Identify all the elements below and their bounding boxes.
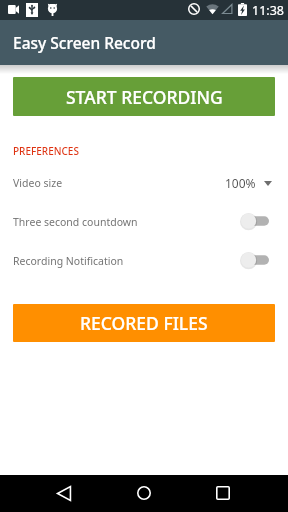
button[interactable]: Home	[120, 475, 168, 512]
button[interactable]: Back	[40, 475, 88, 512]
staticText: RECORED FILES	[80, 311, 208, 335]
button[interactable]: Three second countdown	[0, 209, 288, 235]
staticText: 100%	[225, 175, 256, 191]
staticText: Easy Screen Record	[13, 32, 156, 53]
button[interactable]: START RECORDING	[13, 77, 275, 116]
staticText: Three second countdown	[13, 215, 138, 229]
button[interactable]: Video size	[0, 170, 288, 196]
staticText: 11:38	[252, 2, 284, 19]
staticText: START RECORDING	[66, 85, 223, 109]
staticText: Video size	[13, 176, 63, 190]
button[interactable]: Recording Notification	[0, 248, 288, 274]
staticText: PREFERENCES	[13, 144, 79, 158]
button[interactable]: Recent apps	[199, 475, 247, 512]
button[interactable]: RECORED FILES	[13, 304, 275, 342]
staticText: Recording Notification	[13, 254, 124, 268]
